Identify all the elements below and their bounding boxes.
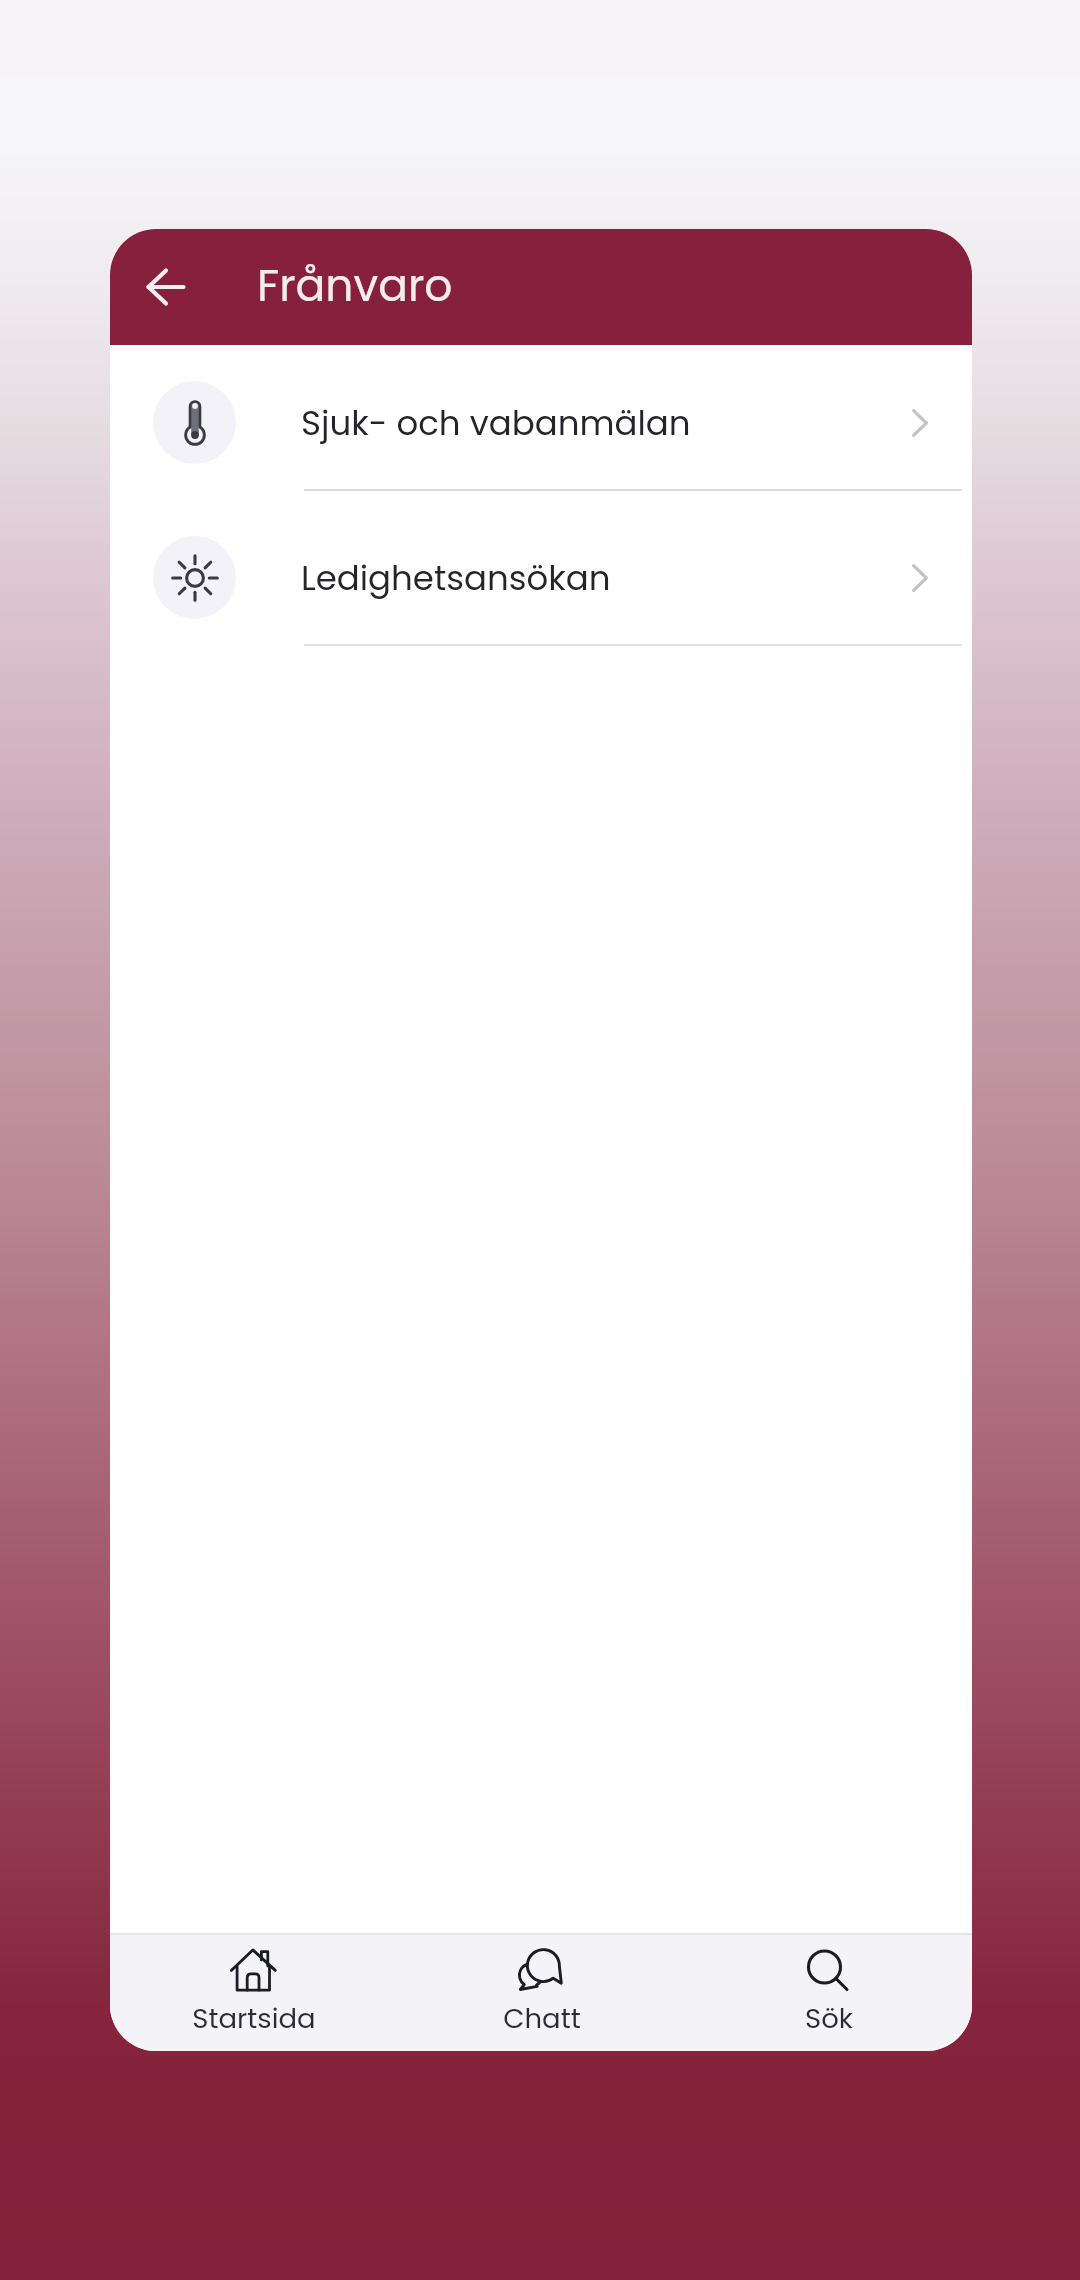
button[interactable]: Chatt <box>398 1933 685 2051</box>
staticText: Startsida <box>192 1999 316 2037</box>
button[interactable]: Sök <box>685 1933 972 2051</box>
staticText: Frånvaro <box>257 255 453 317</box>
staticText: Chatt <box>503 1999 581 2037</box>
button[interactable]: Back <box>136 257 196 317</box>
button[interactable]: Startsida <box>110 1933 398 2051</box>
staticText: Ledighetsansökan <box>301 554 611 602</box>
button[interactable]: Ledighetsansökan <box>110 500 972 655</box>
button[interactable]: Sjuk- och vabanmälan <box>110 345 972 500</box>
staticText: Sök <box>805 1999 853 2037</box>
staticText: Sjuk- och vabanmälan <box>301 399 691 447</box>
